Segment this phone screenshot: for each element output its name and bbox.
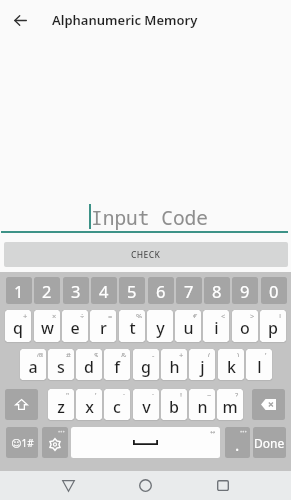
staticText: a bbox=[28, 356, 38, 378]
button[interactable]: Back bbox=[51, 471, 85, 500]
button[interactable]: Backspace bbox=[252, 389, 285, 420]
staticText: ~ bbox=[207, 390, 212, 397]
staticText: @ bbox=[37, 350, 43, 357]
staticText: e bbox=[70, 317, 80, 339]
button[interactable]: z bbox=[48, 389, 74, 420]
button[interactable]: q bbox=[5, 310, 31, 342]
button[interactable]: 5 bbox=[119, 277, 145, 304]
button[interactable]: 6 bbox=[148, 277, 174, 304]
button[interactable]: Done bbox=[253, 427, 286, 458]
button[interactable]: s bbox=[48, 349, 74, 380]
button[interactable]: n bbox=[189, 389, 215, 420]
button[interactable]: f bbox=[104, 349, 130, 380]
button[interactable]: Recents bbox=[206, 471, 240, 500]
staticText: 1 bbox=[14, 280, 24, 302]
staticText: j bbox=[200, 356, 205, 378]
staticText: " bbox=[66, 390, 70, 397]
button[interactable]: j bbox=[189, 349, 215, 380]
button[interactable]: x bbox=[76, 389, 102, 420]
staticText: = bbox=[108, 311, 113, 318]
button[interactable]: Settings bbox=[42, 427, 68, 458]
staticText: ) bbox=[237, 350, 240, 357]
staticText: s bbox=[57, 356, 65, 378]
button[interactable]: d bbox=[76, 349, 102, 380]
button[interactable]: o bbox=[232, 310, 258, 342]
staticText: n bbox=[197, 396, 208, 418]
button[interactable]: CHECK bbox=[4, 242, 288, 267]
button[interactable]: y bbox=[147, 310, 173, 342]
staticText: Input Code bbox=[91, 204, 209, 231]
button[interactable]: r bbox=[90, 310, 116, 342]
button[interactable]: 0 bbox=[261, 277, 287, 304]
staticText: € bbox=[193, 311, 198, 318]
button[interactable]: u bbox=[175, 310, 201, 342]
staticText: & bbox=[121, 350, 127, 357]
staticText: p bbox=[268, 317, 278, 339]
staticText: + bbox=[23, 311, 28, 318]
staticText: | bbox=[278, 311, 283, 318]
staticText: 8 bbox=[212, 280, 222, 302]
button[interactable]: v bbox=[133, 389, 159, 420]
button[interactable]: Shift bbox=[5, 389, 38, 420]
staticText: y bbox=[156, 317, 165, 339]
button[interactable]: Period bbox=[225, 427, 250, 458]
staticText: ÷ bbox=[80, 311, 85, 318]
button[interactable]: 4 bbox=[91, 277, 117, 304]
button[interactable]: 9 bbox=[232, 277, 258, 304]
staticText: + bbox=[179, 350, 184, 357]
staticText: 0 bbox=[269, 280, 279, 302]
button[interactable]: h bbox=[161, 349, 187, 380]
staticText: x bbox=[85, 396, 94, 418]
staticText: v bbox=[142, 396, 151, 418]
button[interactable]: b bbox=[161, 389, 187, 420]
staticText: r bbox=[100, 317, 107, 339]
staticText: 9 bbox=[240, 280, 250, 302]
staticText: ; bbox=[152, 390, 155, 397]
staticText: k bbox=[227, 356, 236, 378]
button[interactable]: a bbox=[20, 349, 46, 380]
staticText: ! bbox=[180, 390, 183, 397]
staticText: t bbox=[129, 317, 136, 339]
staticText: Done bbox=[254, 435, 285, 451]
staticText: ••• bbox=[240, 428, 247, 436]
staticText: ? bbox=[235, 390, 239, 397]
button[interactable]: i bbox=[203, 310, 229, 342]
staticText: ’ bbox=[95, 390, 97, 397]
button[interactable]: Home bbox=[128, 471, 162, 500]
staticText: b bbox=[169, 396, 179, 418]
button[interactable]: ☺1# bbox=[6, 427, 38, 458]
staticText: i bbox=[214, 317, 219, 339]
staticText: c bbox=[113, 396, 121, 418]
button[interactable]: 7 bbox=[176, 277, 202, 304]
button[interactable]: g bbox=[133, 349, 159, 380]
staticText: l bbox=[257, 356, 262, 378]
button[interactable]: c bbox=[104, 389, 130, 420]
button[interactable]: l bbox=[246, 349, 272, 380]
staticText: < bbox=[221, 311, 226, 318]
staticText: ( bbox=[208, 350, 211, 357]
staticText: h bbox=[169, 356, 180, 378]
button[interactable]: e bbox=[62, 310, 88, 342]
staticText: 7 bbox=[184, 280, 194, 302]
staticText: q bbox=[13, 317, 23, 339]
staticText: 5 bbox=[127, 280, 137, 302]
button[interactable]: t bbox=[119, 310, 145, 342]
button[interactable]: 8 bbox=[204, 277, 230, 304]
button[interactable]: w bbox=[34, 310, 60, 342]
button[interactable]: k bbox=[218, 349, 244, 380]
button[interactable]: Back bbox=[6, 6, 34, 34]
button[interactable]: m bbox=[217, 389, 243, 420]
staticText: d bbox=[84, 356, 94, 378]
button[interactable]: p bbox=[260, 310, 286, 342]
staticText: # bbox=[66, 350, 71, 357]
staticText: : bbox=[123, 390, 126, 397]
button[interactable]: 2 bbox=[34, 277, 60, 304]
staticText: $ bbox=[94, 350, 99, 357]
button[interactable]: 1 bbox=[6, 277, 32, 304]
button[interactable]: Space bbox=[71, 427, 220, 458]
staticText: w bbox=[41, 317, 54, 339]
staticText: 4 bbox=[99, 280, 109, 302]
button[interactable]: 3 bbox=[63, 277, 89, 304]
staticText: z bbox=[57, 396, 65, 418]
staticText: . bbox=[235, 434, 240, 456]
